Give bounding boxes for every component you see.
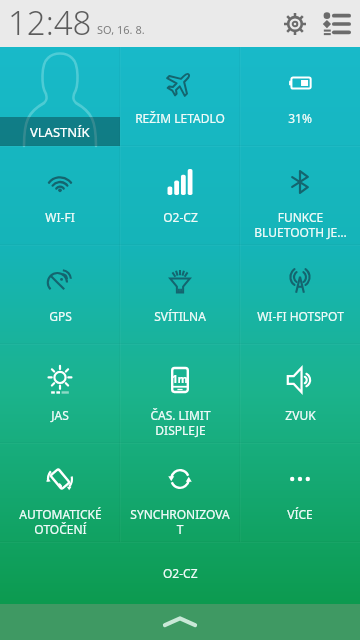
button[interactable]: Collapse panel [0,604,360,640]
staticText: 12:48 [8,0,92,45]
staticText: WI-FI HOTSPOT [257,308,344,324]
staticText: O2-CZ [163,209,198,225]
staticText: JAS [51,407,69,423]
staticText: SVÍTILNA [154,308,206,324]
staticText: REŽIM LETADLO [135,110,225,126]
button[interactable]: Notifications [318,5,356,43]
staticText: WI-FI [45,209,75,225]
staticText: FUNKCE BLUETOOTH JE… [254,209,347,240]
button[interactable]: Settings [280,5,318,43]
button[interactable]: SYNCHRONIZOVA T [120,443,240,542]
staticText: VÍCE [287,506,313,522]
button[interactable]: FUNKCE BLUETOOTH JE… [240,146,360,245]
button[interactable]: ZVUK [240,344,360,443]
button[interactable]: GPS [0,245,120,344]
button[interactable]: VÍCE [240,443,360,542]
staticText: VLASTNÍK [30,123,90,141]
staticText: 1m [172,372,188,386]
button[interactable]: 1m [120,344,240,443]
button[interactable]: SVÍTILNA [120,245,240,344]
button[interactable]: AUTOMATICKÉ OTOČENÍ [0,443,120,542]
staticText: GPS [49,308,72,324]
staticText: O2-CZ [163,565,198,581]
staticText: ZVUK [285,407,316,423]
button[interactable]: WI-FI [0,146,120,245]
staticText: SO, 16. 8. [97,22,145,37]
button[interactable]: VLASTNÍK [0,47,120,146]
button[interactable]: O2-CZ [120,146,240,245]
button[interactable]: JAS [0,344,120,443]
staticText: SYNCHRONIZOVA T [130,506,230,537]
staticText: 31% [288,110,312,126]
button[interactable]: 31% [240,47,360,146]
button[interactable]: WI-FI HOTSPOT [240,245,360,344]
button[interactable]: REŽIM LETADLO [120,47,240,146]
staticText: ČAS. LIMIT DISPLEJE [150,407,211,438]
staticText: AUTOMATICKÉ OTOČENÍ [19,506,102,537]
